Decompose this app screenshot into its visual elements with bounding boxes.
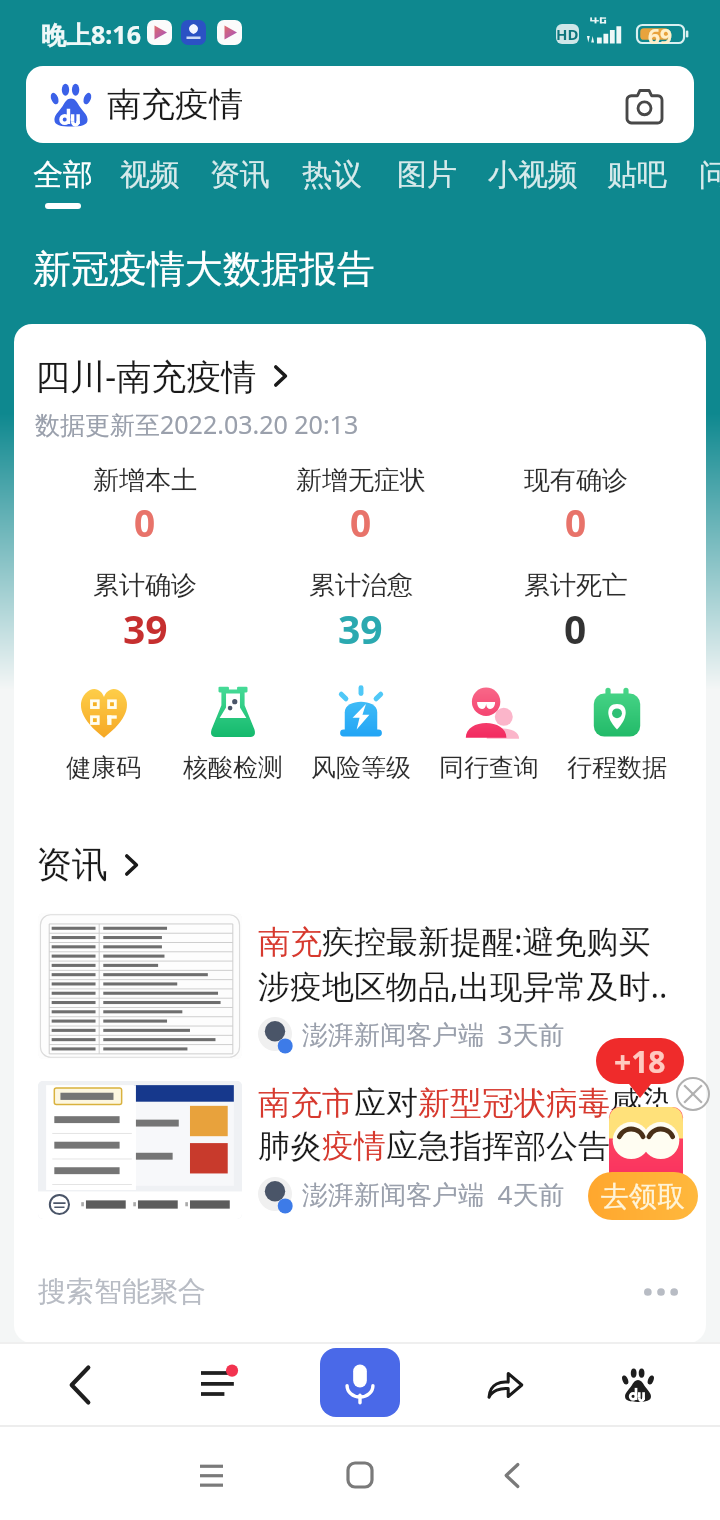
button[interactable]: 健康码 [39,682,168,783]
staticText: 核酸检测 [183,752,283,783]
staticText: 累计死亡 [524,569,628,602]
button[interactable]: 热议 [302,156,362,194]
staticText: 累计治愈 [309,569,413,602]
staticText: 资讯 [210,156,270,194]
staticText: 热议 [302,156,362,194]
button[interactable]: Baidu home [598,1343,678,1426]
staticText: 去领取 [601,1179,685,1214]
staticText: 0 [564,602,587,655]
button[interactable]: 行程数据 [553,682,681,783]
staticText: 新冠疫情大数据报告 [33,245,375,293]
staticText: 全部 [33,156,93,194]
button[interactable]: 去领取 [588,1172,698,1220]
button[interactable]: 累计确诊 [37,569,253,655]
staticText: 小视频 [488,156,578,194]
staticText: 资讯 [36,842,108,887]
staticText: +18 [614,1041,666,1082]
button[interactable]: 南充疫情 [26,66,694,143]
button[interactable]: Recents [171,1445,251,1505]
staticText: 四川-南充疫情 [35,352,257,400]
staticText: 0 [134,497,156,547]
button[interactable]: 南充疾控最新提醒:避免购买 涉疫地区物品,出现异常及时… [14,913,706,1059]
staticText: 0 [350,497,372,547]
staticText: 南充疫情 [107,83,243,126]
staticText: 澎湃新闻客户端 4天前 [302,1176,565,1212]
staticText: 39 [123,602,168,655]
button[interactable]: Voice search [320,1348,400,1417]
button[interactable]: Back [40,1343,120,1426]
button[interactable]: Menu [183,1343,263,1426]
button[interactable]: 新增无症状 [253,464,468,547]
button[interactable]: 核酸检测 [168,682,297,783]
button[interactable]: Back [472,1445,552,1505]
staticText: 现有确诊 [524,464,628,497]
button[interactable]: 同行查询 [425,682,553,783]
staticText: 问 [699,156,720,194]
staticText: 南充疾控最新提醒:避免购买 涉疫地区物品,出现异常及时… [258,919,668,1007]
staticText: 贴吧 [607,156,667,194]
button[interactable]: Home [320,1445,400,1505]
button[interactable]: 四川-南充疫情 [14,352,706,400]
staticText: 数据更新至2022.03.20 20:13 [35,407,359,441]
button[interactable]: 图片 [397,156,457,194]
button[interactable]: 南充市应对新型冠状病毒感染 肺炎疫情应急指挥部公告 [14,1081,706,1219]
button[interactable]: Close ad [676,1077,710,1111]
button[interactable]: 资讯 [210,156,270,194]
staticText: 风险等级 [311,752,411,783]
button[interactable]: Camera search [618,79,670,131]
button[interactable]: 风险等级 [297,682,425,783]
staticText: 行程数据 [567,752,667,783]
staticText: 累计确诊 [93,569,197,602]
button[interactable]: 搜索智能聚合 [14,1274,706,1309]
button[interactable]: 问 [699,156,720,194]
button[interactable]: 贴吧 [607,156,667,194]
staticText: 0 [565,497,587,547]
staticText: 视频 [120,156,180,194]
button[interactable]: 小视频 [488,156,578,194]
button[interactable]: 资讯 [14,842,146,887]
staticText: 新增本土 [93,464,197,497]
button[interactable]: Share [465,1343,545,1426]
button[interactable]: +18 [596,1038,684,1084]
button[interactable]: 新增本土 [37,464,253,547]
staticText: 39 [338,602,383,655]
staticText: 晚上8:16 [41,17,141,51]
staticText: 澎湃新闻客户端 3天前 [302,1016,565,1052]
button[interactable]: 累计死亡 [468,569,683,655]
button[interactable]: 现有确诊 [468,464,683,547]
staticText: 新增无症状 [296,464,426,497]
button[interactable]: 全部 [33,156,93,209]
button[interactable]: 视频 [120,156,180,194]
staticText: 健康码 [66,752,141,783]
staticText: HD [556,24,579,44]
staticText: 同行查询 [439,752,539,783]
staticText: 69 [648,22,673,51]
staticText: 南充市应对新型冠状病毒感染 肺炎疫情应急指挥部公告 [258,1083,668,1167]
button[interactable]: Open red packet [609,1107,683,1212]
staticText: 图片 [397,156,457,194]
staticText: 搜索智能聚合 [38,1274,206,1309]
button[interactable]: 累计治愈 [253,569,468,655]
